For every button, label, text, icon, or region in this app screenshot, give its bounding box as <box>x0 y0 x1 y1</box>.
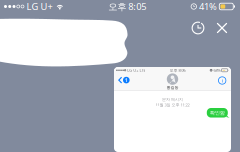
staticText: LG U+ <box>127 68 138 73</box>
staticText: 홍길동 <box>166 85 178 90</box>
staticText: 문자 메시지 <box>162 97 183 102</box>
staticText: 41% <box>199 0 217 13</box>
button[interactable]: Back <box>118 76 130 84</box>
button[interactable]: Close <box>215 21 229 35</box>
staticText: 11월 3일 오후 11:22 <box>155 102 189 107</box>
staticText: LG U+ <box>27 0 53 13</box>
button[interactable]: Details <box>218 77 226 84</box>
button[interactable]: Recents <box>191 21 205 35</box>
staticText: LTE <box>139 68 145 73</box>
staticText: i <box>222 77 223 84</box>
staticText: 오후 8:05 <box>108 0 146 13</box>
staticText: 오후 8:06 <box>170 68 186 73</box>
staticText: 68% <box>213 68 220 73</box>
staticText: 1 <box>125 77 128 84</box>
staticText: 확인함 <box>210 109 225 116</box>
